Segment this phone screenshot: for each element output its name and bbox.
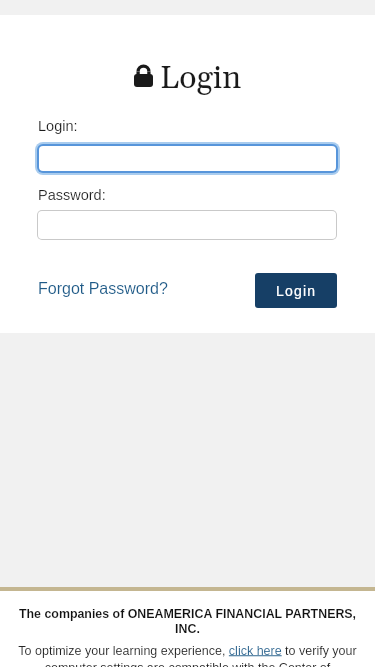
staticText: computer settings are compatible with th…: [0, 661, 375, 667]
staticText: Login:: [38, 118, 78, 134]
button[interactable]: To optimize your learning experience, cl…: [0, 644, 375, 658]
button[interactable]: Login: [255, 273, 337, 308]
staticText: Login: [276, 283, 317, 299]
button[interactable]: Forgot Password?: [38, 280, 168, 298]
button[interactable]: [39, 146, 336, 171]
staticText: Login: [160, 58, 242, 98]
staticText: Password:: [38, 187, 106, 203]
staticText: The companies of ONEAMERICA FINANCIAL PA…: [0, 607, 375, 621]
staticText: INC.: [0, 622, 375, 636]
